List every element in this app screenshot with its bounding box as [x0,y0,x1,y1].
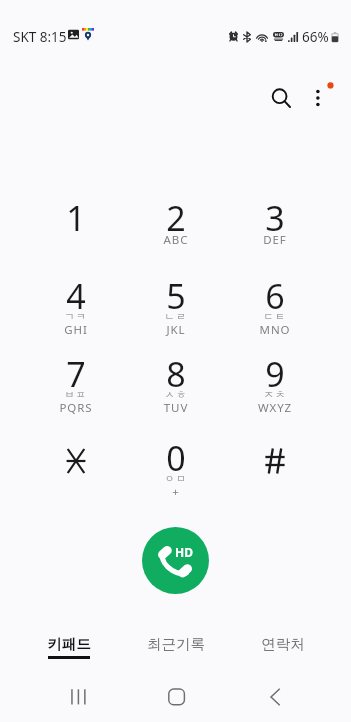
button[interactable]: 7 [28,342,124,414]
staticText: 6 [227,273,323,319]
button[interactable]: 4 [28,264,124,336]
button[interactable]: 1 [28,186,124,258]
button[interactable]: 연락처 [230,626,336,666]
button[interactable]: 키패드 [16,626,122,666]
button[interactable]: 2 [128,186,224,258]
staticText: ㅇㅁ [128,472,224,485]
staticText: JKL [128,322,224,338]
button[interactable]: 6 [227,264,323,336]
staticText: + [128,484,224,500]
button[interactable]: Search [258,76,302,120]
staticText: 2 [128,195,224,241]
staticText: PQRS [28,400,124,416]
staticText: HD [175,544,193,560]
staticText: MNO [227,322,323,338]
button[interactable]: 0 [128,426,224,498]
staticText: 연락처 [230,635,336,653]
staticText: 키패드 [16,635,122,653]
staticText: 최근기록 [123,635,229,653]
button[interactable]: 3 [227,186,323,258]
staticText: TUV [128,400,224,416]
staticText: WXYZ [227,400,323,416]
staticText: ㄴㄹ [128,310,224,323]
button[interactable]: More options [300,76,344,120]
staticText: 4 [28,273,124,319]
button[interactable]: 8 [128,342,224,414]
staticText: ㄷㅌ [227,310,323,323]
staticText: ABC [128,232,224,248]
button[interactable]: 5 [128,264,224,336]
staticText: 8 [128,351,224,397]
staticText: 9 [227,351,323,397]
staticText: DEF [227,232,323,248]
staticText: ㄱㅋ [28,310,124,323]
staticText: GHI [28,322,124,338]
staticText: 3 [227,195,323,241]
staticText: SKT 8:15 [13,28,67,46]
staticText: ㅅㅎ [128,388,224,401]
staticText: 0 [128,435,224,481]
button[interactable]: Back [254,675,296,719]
button[interactable]: Recent apps [58,675,100,719]
staticText: ㅂㅍ [28,388,124,401]
staticText: 5 [128,273,224,319]
button[interactable]: Home [155,675,197,719]
staticText: 7 [28,351,124,397]
button[interactable]: 최근기록 [123,626,229,666]
staticText: 66% [302,28,329,46]
staticText: 1 [28,195,124,241]
button[interactable] [227,426,323,498]
button[interactable]: 9 [227,342,323,414]
button[interactable] [28,426,124,498]
button[interactable]: Call [142,527,209,594]
staticText: ㅈㅊ [227,388,323,401]
